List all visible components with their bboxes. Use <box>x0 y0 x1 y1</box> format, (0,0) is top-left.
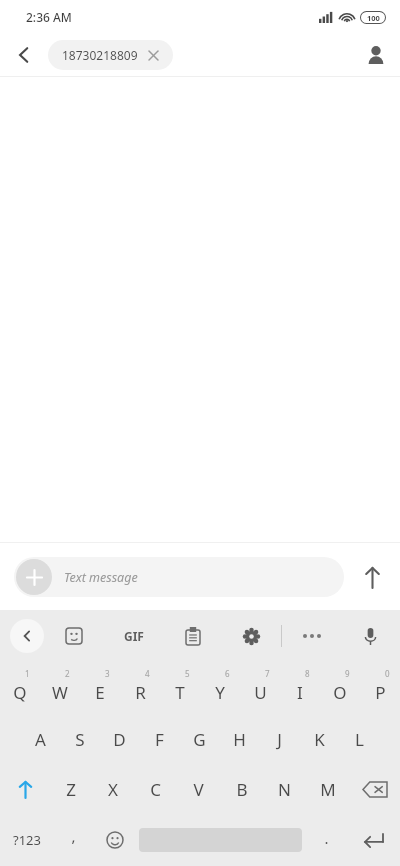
staticText: 2 <box>65 668 70 679</box>
button[interactable]: Settings <box>222 610 281 662</box>
button[interactable]: Attach <box>14 557 344 597</box>
staticText: J <box>277 728 282 751</box>
staticText: U <box>254 681 267 704</box>
staticText: 8 <box>305 668 310 679</box>
staticText: Y <box>215 681 225 704</box>
staticText: 2:36 AM <box>26 9 72 25</box>
button[interactable]: U <box>240 662 280 714</box>
staticText: D <box>113 728 126 751</box>
staticText: T <box>175 681 185 704</box>
button[interactable]: A <box>21 714 60 764</box>
staticText: M <box>320 778 336 801</box>
staticText: 1 <box>25 668 30 679</box>
button[interactable]: Emoji <box>94 814 135 866</box>
staticText: Text message <box>64 569 138 586</box>
staticText: H <box>233 728 246 751</box>
staticText: L <box>355 728 364 751</box>
button[interactable]: Shift <box>0 764 50 814</box>
staticText: 18730218809 <box>62 47 138 63</box>
staticText: X <box>108 778 118 801</box>
button[interactable]: J <box>259 714 299 764</box>
button[interactable]: Back <box>0 34 48 76</box>
button[interactable]: B <box>220 764 263 814</box>
staticText: S <box>75 728 85 751</box>
staticText: N <box>278 778 291 801</box>
button[interactable]: L <box>339 714 379 764</box>
button[interactable]: 18730218809 <box>48 40 173 70</box>
staticText: C <box>150 778 161 801</box>
button[interactable]: , <box>53 814 94 866</box>
button[interactable]: More options <box>282 610 341 662</box>
button[interactable]: E <box>80 662 120 714</box>
button[interactable]: D <box>99 714 139 764</box>
button[interactable]: X <box>92 764 134 814</box>
button[interactable]: Send <box>344 549 400 605</box>
button[interactable]: Attach <box>16 559 52 595</box>
staticText: R <box>135 681 146 704</box>
staticText: F <box>155 728 164 751</box>
button[interactable]: Close toolbar <box>10 619 44 653</box>
staticText: 6 <box>225 668 230 679</box>
button[interactable]: Contact details <box>352 34 400 76</box>
button[interactable]: K <box>299 714 339 764</box>
button[interactable]: Voice input <box>341 610 400 662</box>
staticText: ?123 <box>13 831 41 849</box>
button[interactable]: O <box>320 662 360 714</box>
button[interactable]: H <box>219 714 259 764</box>
staticText: 0 <box>385 668 390 679</box>
button[interactable]: F <box>139 714 179 764</box>
staticText: V <box>193 778 204 801</box>
button[interactable]: Q <box>0 662 40 714</box>
staticText: B <box>236 778 248 801</box>
button[interactable]: Y <box>200 662 240 714</box>
button[interactable]: N <box>263 764 306 814</box>
staticText: P <box>375 681 386 704</box>
staticText: . <box>324 828 329 848</box>
staticText: 100 <box>367 13 380 23</box>
button[interactable]: I <box>280 662 320 714</box>
button[interactable]: Stickers <box>44 610 104 662</box>
button[interactable]: S <box>60 714 99 764</box>
staticText: 5 <box>185 668 190 679</box>
button[interactable]: P <box>360 662 400 714</box>
staticText: G <box>193 728 206 751</box>
staticText: 4 <box>145 668 150 679</box>
staticText: 7 <box>265 668 270 679</box>
button[interactable]: Clipboard <box>163 610 222 662</box>
button[interactable]: R <box>120 662 160 714</box>
staticText: W <box>52 681 68 704</box>
staticText: K <box>314 728 325 751</box>
staticText: E <box>95 681 105 704</box>
staticText: , <box>71 826 76 846</box>
staticText: 9 <box>345 668 350 679</box>
staticText: O <box>333 681 347 704</box>
button[interactable]: G <box>179 714 219 764</box>
staticText: 3 <box>105 668 110 679</box>
staticText: Z <box>66 778 76 801</box>
button[interactable]: W <box>40 662 80 714</box>
button[interactable]: Z <box>50 764 92 814</box>
button[interactable]: GIF <box>104 610 163 662</box>
button[interactable]: Enter <box>347 814 400 866</box>
button[interactable]: M <box>306 764 349 814</box>
staticText: Q <box>13 681 27 704</box>
button[interactable]: Backspace <box>349 764 400 814</box>
button[interactable]: C <box>134 764 177 814</box>
staticText: A <box>35 728 46 751</box>
button[interactable]: V <box>177 764 220 814</box>
button[interactable]: . <box>306 814 347 866</box>
button[interactable]: T <box>160 662 200 714</box>
staticText: I <box>297 681 303 704</box>
staticText: GIF <box>124 628 144 644</box>
button[interactable]: ?123 <box>0 814 53 866</box>
